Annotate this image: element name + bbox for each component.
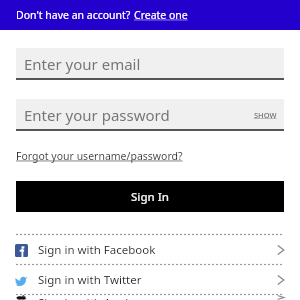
staticText: Enter your password <box>24 105 170 125</box>
button[interactable]: Enter your password <box>16 99 284 131</box>
staticText: Don't have an account? <box>16 8 134 22</box>
button[interactable]: SHOW <box>254 110 277 120</box>
button[interactable]: Sign in with Twitter <box>0 265 300 294</box>
button[interactable]: Sign In <box>16 181 284 212</box>
staticText: Enter your email <box>24 54 141 74</box>
button[interactable]: Sign in with Facebook <box>0 235 300 264</box>
button[interactable]: Enter your email <box>16 48 284 80</box>
staticText: Sign In <box>131 189 170 205</box>
staticText: Forgot your username/password? <box>16 149 183 163</box>
button[interactable]: Sign in with Apple <box>0 295 300 300</box>
staticText: Sign in with Facebook <box>38 242 156 258</box>
staticText: Sign in with Twitter <box>38 272 142 288</box>
staticText: Create one <box>134 8 188 22</box>
button[interactable]: Create one <box>134 8 188 22</box>
staticText: Sign in with Apple <box>38 295 135 300</box>
staticText: SHOW <box>254 110 277 120</box>
button[interactable]: Forgot your username/password? <box>16 149 183 163</box>
